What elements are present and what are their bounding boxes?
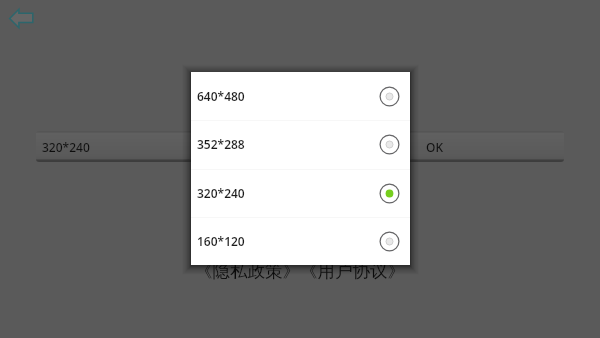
staticText: 320*240	[197, 185, 379, 201]
button[interactable]: 《隐私政策》	[195, 260, 300, 282]
staticText: 352*288	[197, 136, 379, 152]
button[interactable]: 352*288	[191, 120, 410, 168]
button[interactable]: 640*480	[191, 72, 410, 120]
button[interactable]: OK	[412, 131, 564, 162]
staticText: 640*480	[197, 88, 379, 104]
staticText: OK	[426, 139, 443, 155]
button[interactable]: 《用户协议》	[300, 260, 405, 282]
staticText: 160*120	[197, 233, 379, 249]
button[interactable]: 320*240	[36, 131, 412, 162]
button[interactable]: 320*240	[191, 169, 410, 217]
button[interactable]: 160*120	[191, 217, 410, 265]
staticText: 320*240	[42, 139, 90, 155]
button[interactable]: Back	[2, 2, 42, 36]
